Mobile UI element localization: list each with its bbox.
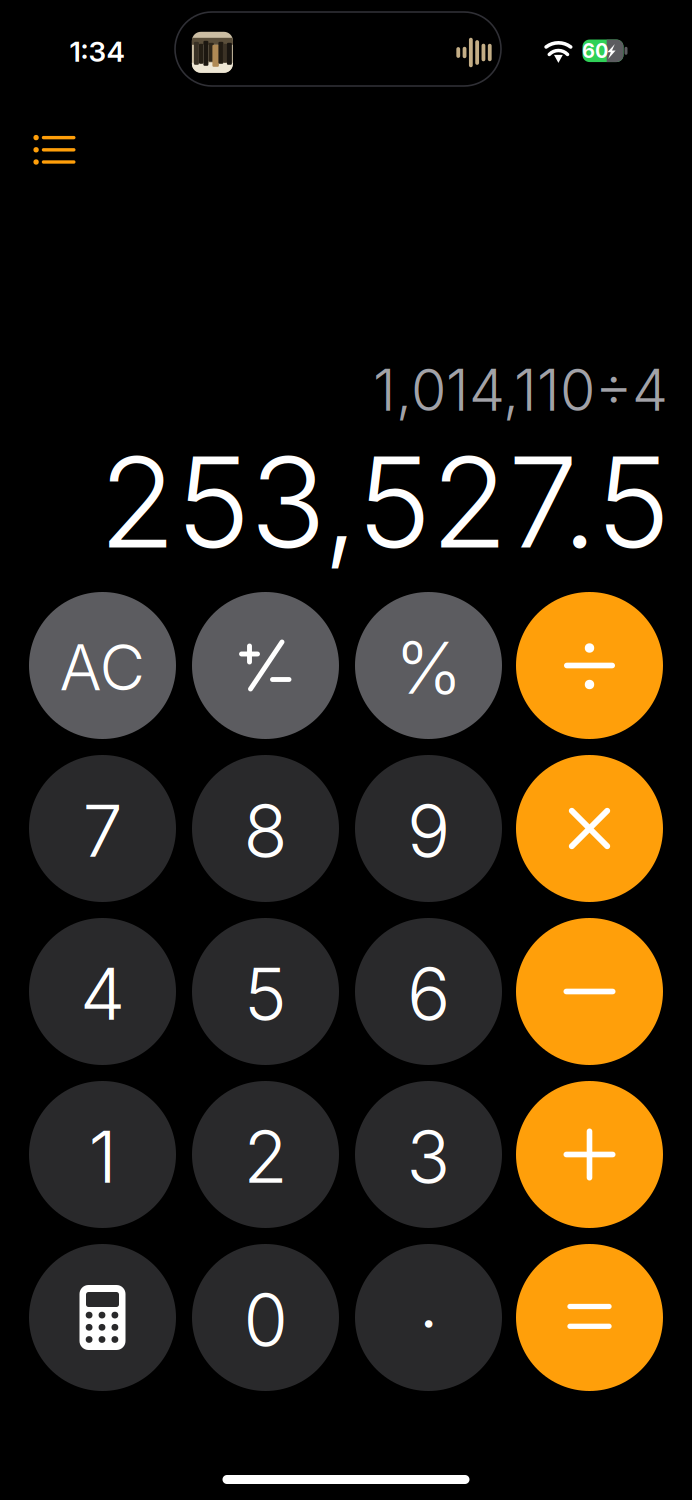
button[interactable]: 4 [29, 918, 176, 1065]
staticText: % [395, 624, 462, 711]
staticText: 1,014,110÷4 [373, 355, 668, 425]
button[interactable]: Plus Minus [192, 592, 339, 739]
staticText: . [418, 1258, 438, 1345]
staticText: 4 [80, 950, 125, 1037]
staticText: 9 [407, 787, 450, 874]
button[interactable]: 3 [355, 1081, 502, 1228]
button[interactable]: AC [29, 592, 176, 739]
staticText: 8 [243, 787, 287, 874]
button[interactable]: 0 [192, 1244, 339, 1391]
staticText: 2 [243, 1113, 287, 1200]
button[interactable]: Add [516, 1081, 663, 1228]
button[interactable]: % [355, 592, 502, 739]
button[interactable]: 6 [355, 918, 502, 1065]
button[interactable]: . [355, 1244, 502, 1391]
button[interactable]: Calculator [29, 1244, 176, 1391]
staticText: 0 [243, 1276, 287, 1363]
button[interactable]: 5 [192, 918, 339, 1065]
staticText: 60 [582, 39, 608, 63]
button[interactable]: Multiply [516, 755, 663, 902]
button[interactable]: 1 [29, 1081, 176, 1228]
button[interactable]: Divide [516, 592, 663, 739]
button[interactable]: History [19, 118, 91, 182]
staticText: 1 [88, 1113, 116, 1200]
staticText: 1:34 [69, 35, 124, 68]
staticText: 5 [244, 950, 287, 1037]
button[interactable]: Subtract [516, 918, 663, 1065]
button[interactable]: 7 [29, 755, 176, 902]
staticText: 253,527.5 [99, 426, 670, 578]
staticText: AC [59, 630, 145, 705]
button[interactable]: 8 [192, 755, 339, 902]
button[interactable]: Equals [516, 1244, 663, 1391]
button[interactable]: 9 [355, 755, 502, 902]
button[interactable]: 2 [192, 1081, 339, 1228]
staticText: 7 [82, 787, 122, 874]
staticText: 3 [406, 1113, 450, 1200]
staticText: 6 [407, 950, 450, 1037]
